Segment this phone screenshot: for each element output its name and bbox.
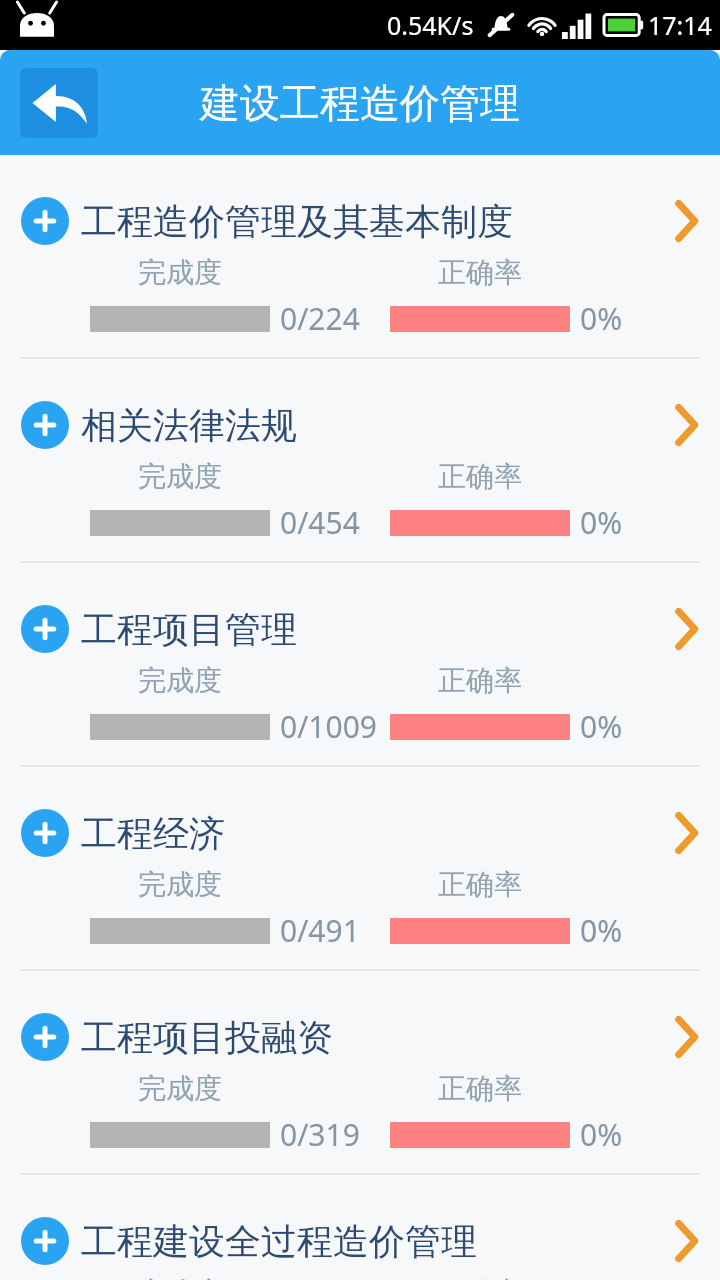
button[interactable]: 工程经济	[0, 767, 720, 969]
staticText: 完成度	[138, 867, 222, 902]
staticText: 工程项目管理	[81, 607, 674, 652]
staticText: 完成度	[138, 459, 222, 494]
staticText: 0/319	[280, 1114, 360, 1155]
button[interactable]: 相关法律法规	[0, 359, 720, 561]
staticText: 0%	[580, 910, 623, 951]
staticText: 相关法律法规	[81, 403, 674, 448]
button[interactable]: 工程建设全过程造价管理	[0, 1175, 720, 1280]
staticText: 正确率	[438, 867, 522, 902]
staticText: 正确率	[438, 255, 522, 290]
staticText: 建设工程造价管理	[200, 78, 520, 128]
staticText: 完成度	[138, 255, 222, 290]
staticText: 0%	[580, 502, 623, 543]
button[interactable]: 工程造价管理及其基本制度	[0, 155, 720, 357]
staticText: 0%	[580, 298, 623, 339]
staticText: 0%	[580, 706, 623, 747]
staticText: 完成度	[138, 1275, 222, 1280]
button[interactable]: 工程项目管理	[0, 563, 720, 765]
staticText: 正确率	[438, 663, 522, 698]
staticText: 正确率	[438, 1275, 522, 1280]
staticText: 工程项目投融资	[81, 1015, 674, 1060]
staticText: 正确率	[438, 459, 522, 494]
staticText: 完成度	[138, 663, 222, 698]
staticText: 工程建设全过程造价管理	[81, 1219, 674, 1264]
staticText: 工程造价管理及其基本制度	[81, 199, 674, 244]
staticText: 0/224	[280, 298, 360, 339]
staticText: 工程经济	[81, 811, 674, 856]
staticText: 0%	[580, 1114, 623, 1155]
staticText: 完成度	[138, 1071, 222, 1106]
staticText: 正确率	[438, 1071, 522, 1106]
staticText: 0/1009	[280, 706, 377, 747]
button[interactable]: 返回	[20, 68, 98, 138]
staticText: 17:14	[648, 8, 712, 42]
staticText: 0/454	[280, 502, 360, 543]
button[interactable]: 工程项目投融资	[0, 971, 720, 1173]
staticText: 0.54K/s	[387, 8, 474, 42]
staticText: 0/491	[280, 910, 360, 951]
